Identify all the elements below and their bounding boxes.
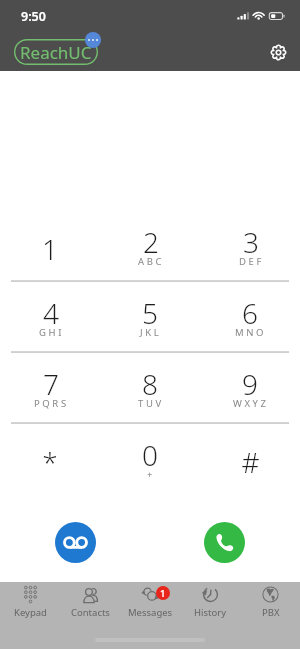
staticText: PBX xyxy=(262,606,280,619)
staticText: 9:50 xyxy=(21,8,46,25)
staticText: PQRS xyxy=(34,397,69,410)
staticText: # xyxy=(241,443,260,481)
button[interactable]: 2 xyxy=(100,211,200,280)
staticText: 4 xyxy=(43,294,59,332)
button[interactable]: 6 xyxy=(200,282,300,351)
staticText: History xyxy=(194,606,226,619)
button[interactable]: 9 xyxy=(200,353,300,422)
button[interactable]: 5 xyxy=(100,282,200,351)
staticText: 2 xyxy=(143,223,159,261)
staticText: 7 xyxy=(43,365,59,403)
staticText: WXYZ xyxy=(233,397,269,410)
staticText: 8 xyxy=(142,365,158,403)
staticText: MNO xyxy=(235,326,267,339)
staticText: JKL xyxy=(140,326,162,339)
button[interactable]: # xyxy=(200,424,300,493)
staticText: 1 xyxy=(42,230,58,268)
staticText: Contacts xyxy=(71,606,110,619)
button[interactable]: Contacts xyxy=(60,585,120,623)
staticText: + xyxy=(147,468,156,481)
staticText: GHI xyxy=(39,326,64,339)
button[interactable]: 1 xyxy=(0,211,100,280)
button[interactable]: 4 xyxy=(0,282,100,351)
button[interactable]: More xyxy=(85,32,101,48)
button[interactable]: 8 xyxy=(100,353,200,422)
button[interactable]: History xyxy=(180,585,240,623)
button[interactable]: Call xyxy=(204,522,245,563)
button[interactable]: 3 xyxy=(200,211,300,280)
button[interactable]: ReachUC xyxy=(14,39,98,65)
button[interactable]: * xyxy=(0,424,100,493)
button[interactable]: PBX xyxy=(240,585,300,623)
staticText: 0 xyxy=(142,436,158,474)
button[interactable]: 0 xyxy=(100,424,200,493)
staticText: TUV xyxy=(138,397,164,410)
staticText: 3 xyxy=(243,223,259,261)
staticText: Keypad xyxy=(14,606,47,619)
staticText: * xyxy=(42,443,58,481)
staticText: 1 xyxy=(160,587,166,600)
button[interactable]: 7 xyxy=(0,353,100,422)
button[interactable]: Voicemail xyxy=(55,522,96,563)
button[interactable]: 1 xyxy=(120,585,180,623)
staticText: Messages xyxy=(128,606,173,619)
staticText: ABC xyxy=(138,255,165,268)
staticText: 5 xyxy=(142,294,158,332)
staticText: 6 xyxy=(242,294,258,332)
staticText: 9 xyxy=(242,365,258,403)
staticText: DEF xyxy=(239,255,264,268)
staticText: ReachUC xyxy=(20,41,92,64)
button[interactable]: Settings xyxy=(264,38,292,66)
button[interactable]: Keypad xyxy=(0,585,60,623)
